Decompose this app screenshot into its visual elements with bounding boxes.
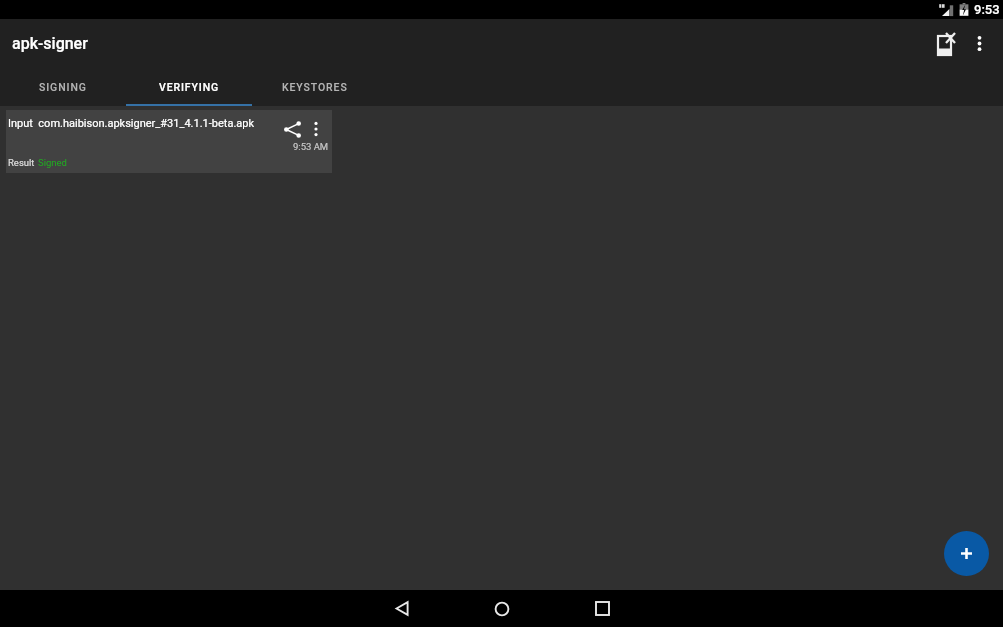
button[interactable]: More options [956, 20, 1003, 67]
staticText: apk-signer [12, 34, 88, 53]
button[interactable]: KEYSTORES [252, 67, 378, 106]
staticText: 9:53 AM [293, 141, 329, 152]
staticText: Input com.haibison.apksigner_#31_4.1.1-b… [8, 117, 255, 130]
staticText: Result [8, 157, 35, 168]
button[interactable]: Share [282, 119, 302, 139]
button[interactable]: SIGNING [0, 67, 126, 106]
staticText: SIGNING [39, 81, 87, 93]
button[interactable]: Home [452, 590, 552, 627]
staticText: VERIFYING [159, 81, 220, 93]
staticText: 9:53 [974, 2, 1000, 17]
button[interactable]: VERIFYING [126, 67, 252, 106]
button[interactable]: Add [944, 531, 989, 576]
button[interactable]: Clear [918, 20, 956, 67]
staticText: KEYSTORES [282, 81, 348, 93]
button[interactable]: Recents [552, 590, 652, 627]
staticText: Signed [38, 157, 67, 168]
button[interactable]: Input com.haibison.apksigner_#31_4.1.1-b… [6, 110, 332, 173]
button[interactable]: Back [352, 590, 452, 627]
button[interactable]: More [306, 119, 326, 139]
